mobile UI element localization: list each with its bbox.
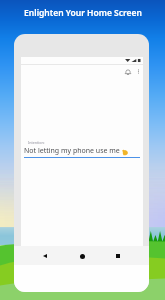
button[interactable]: Notifications <box>122 66 134 78</box>
staticText: Not letting my phone use me <box>24 146 120 156</box>
button[interactable]: Recent apps <box>112 250 124 262</box>
button[interactable]: More options <box>134 67 143 76</box>
button[interactable]: Home <box>76 250 88 262</box>
button[interactable]: Back <box>39 250 51 262</box>
staticText: Intention: <box>28 140 45 145</box>
staticText: Enlighten Your Home Screen <box>24 7 142 19</box>
